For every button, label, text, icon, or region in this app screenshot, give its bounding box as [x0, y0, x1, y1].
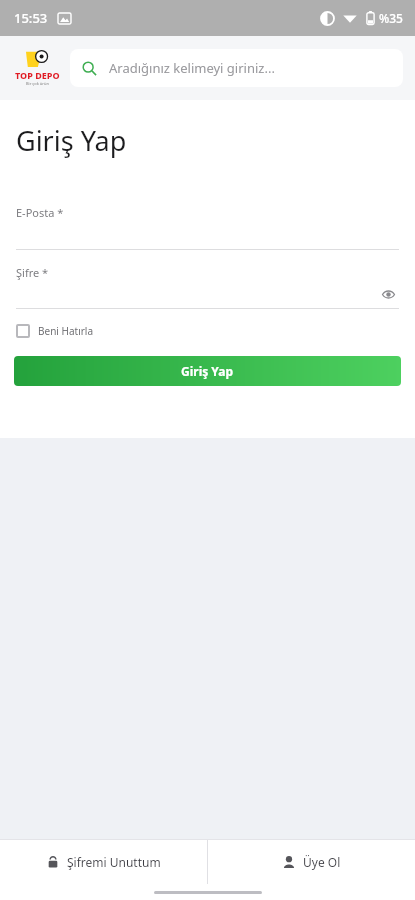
staticText: TOP DEPO: [15, 69, 60, 81]
button[interactable]: E-Posta *: [0, 205, 415, 250]
staticText: 15:53: [14, 9, 48, 27]
button[interactable]: Top Depo ana sayfa: [10, 50, 64, 86]
staticText: Giriş Yap: [16, 122, 127, 159]
button[interactable]: Giriş Yap: [14, 356, 401, 386]
staticText: Şifremi Unuttum: [67, 854, 161, 870]
button[interactable]: Aradığınız kelimeyi giriniz...: [70, 49, 403, 87]
button[interactable]: Beni Hatırla: [16, 324, 94, 338]
button[interactable]: Üye Ol: [208, 840, 415, 884]
staticText: Giriş Yap: [181, 363, 234, 379]
button[interactable]: Şifreyi göster: [377, 283, 399, 305]
staticText: Beni Hatırla: [38, 324, 94, 338]
staticText: Aradığınız kelimeyi giriniz...: [109, 59, 275, 77]
staticText: Üye Ol: [303, 854, 341, 870]
staticText: E-Posta *: [16, 205, 64, 220]
button[interactable]: Şifremi Unuttum: [0, 840, 207, 884]
button[interactable]: Şifre *: [0, 265, 415, 309]
staticText: Bir çok ürün: [26, 81, 49, 86]
staticText: %35: [379, 10, 403, 26]
staticText: Şifre *: [16, 265, 49, 280]
